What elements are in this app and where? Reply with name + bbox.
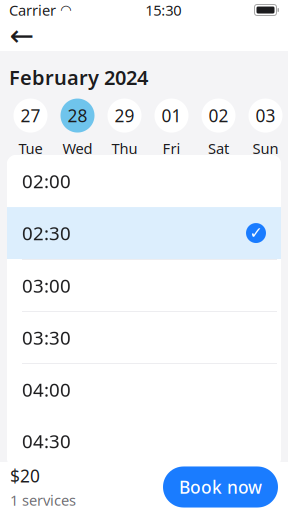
staticText: 02:00	[22, 169, 71, 193]
staticText: 28	[67, 104, 87, 127]
staticText: 02	[208, 104, 228, 127]
staticText: 03:00	[22, 273, 71, 298]
button[interactable]: 03	[242, 99, 288, 158]
staticText: Carrier	[9, 0, 56, 20]
staticText: 01	[161, 104, 181, 127]
staticText: Sat	[208, 139, 229, 158]
button[interactable]: 01	[148, 99, 195, 158]
staticText: ←	[9, 19, 34, 52]
button[interactable]: 02	[195, 99, 242, 158]
staticText: 03	[255, 104, 275, 127]
staticText: Wed	[62, 139, 92, 158]
staticText: Thu	[111, 139, 137, 158]
staticText: 04:30	[22, 429, 71, 453]
staticText: 29	[114, 104, 134, 127]
button[interactable]: 02:00	[7, 155, 281, 207]
staticText: ✓	[249, 224, 262, 242]
staticText: 27	[20, 104, 40, 127]
button[interactable]: Back	[5, 20, 39, 50]
staticText: Sun	[252, 139, 278, 158]
staticText: Tue	[18, 139, 42, 158]
staticText: 15:30	[145, 0, 181, 20]
staticText: Fri	[162, 139, 180, 158]
staticText: 04:00	[22, 377, 71, 402]
button[interactable]: 28	[54, 99, 101, 158]
button[interactable]: 04:30	[7, 415, 281, 467]
button[interactable]: 03:00	[7, 259, 281, 311]
button[interactable]: 02:30	[7, 207, 281, 259]
staticText: 1 services	[10, 490, 76, 510]
staticText: 02:30	[22, 221, 71, 245]
staticText: Book now	[179, 475, 262, 498]
button[interactable]: 29	[101, 99, 148, 158]
staticText: ◠	[60, 2, 72, 17]
button[interactable]: 27	[7, 99, 54, 158]
staticText: $20	[10, 464, 40, 487]
button[interactable]: Book now	[163, 466, 278, 507]
button[interactable]: 04:00	[7, 363, 281, 415]
staticText: February 2024	[9, 64, 148, 91]
staticText: 03:30	[22, 325, 71, 350]
button[interactable]: 03:30	[7, 311, 281, 363]
